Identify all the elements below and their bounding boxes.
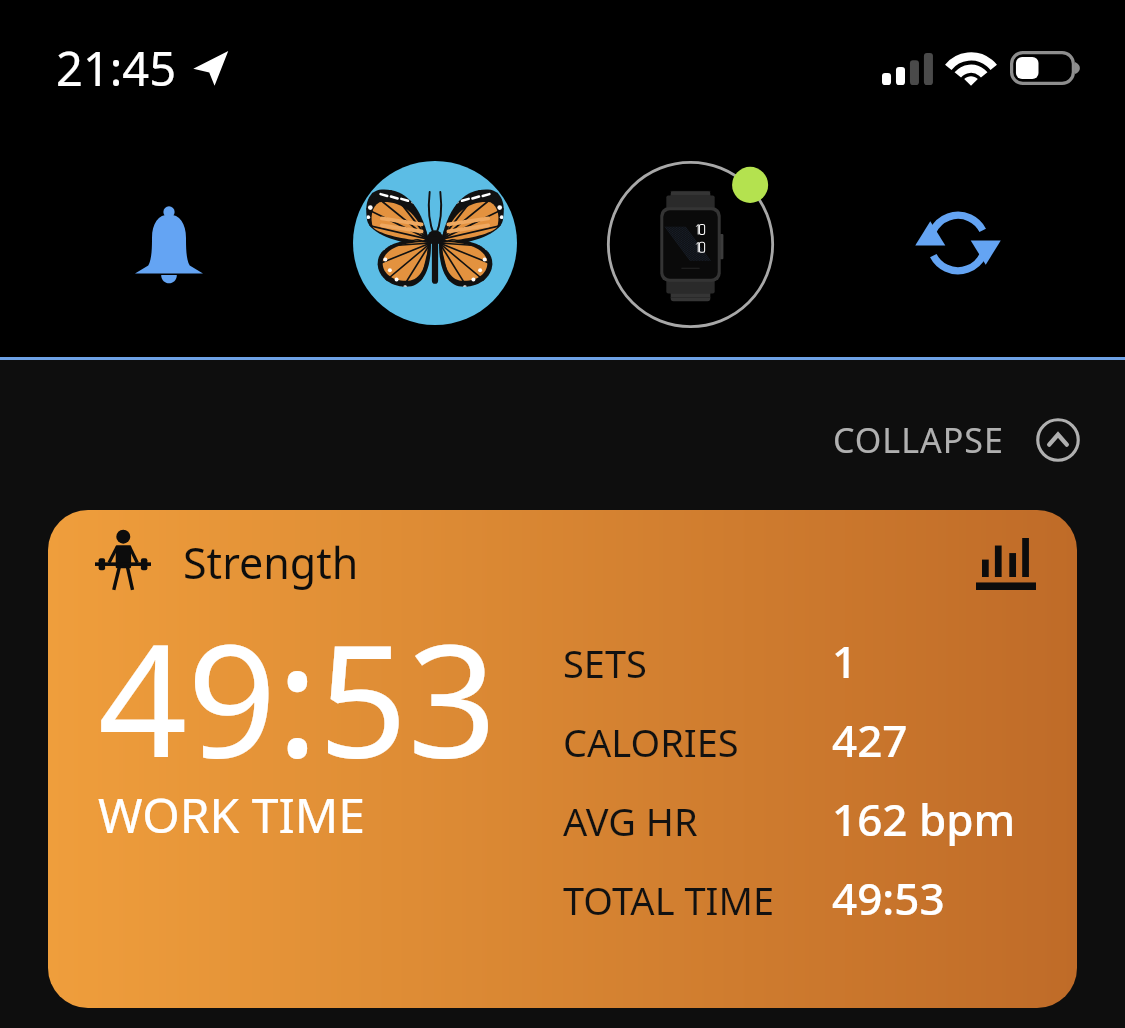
button[interactable]: Sync — [903, 188, 1013, 298]
staticText: WORK TIME — [98, 782, 365, 847]
staticText: AVG HR — [563, 795, 698, 847]
staticText: 21:45 — [56, 36, 177, 100]
staticText: 162 bpm — [832, 789, 1016, 849]
button[interactable]: Strength — [48, 510, 1077, 1008]
button[interactable]: Watch — [607, 161, 774, 328]
staticText: 427 — [832, 710, 908, 770]
button[interactable]: Statistics — [976, 538, 1036, 590]
button[interactable]: Profile — [353, 161, 517, 325]
staticText: 1 — [832, 631, 858, 691]
staticText: COLLAPSE — [833, 417, 1004, 463]
staticText: 49:53 — [832, 868, 945, 928]
staticText: 49:53 — [98, 590, 497, 802]
button[interactable]: Notifications — [109, 186, 229, 306]
staticText: SETS — [563, 637, 647, 689]
staticText: TOTAL TIME — [563, 874, 775, 926]
button[interactable]: COLLAPSE — [833, 417, 1080, 463]
staticText: Strength — [183, 533, 359, 592]
staticText: CALORIES — [563, 716, 739, 768]
